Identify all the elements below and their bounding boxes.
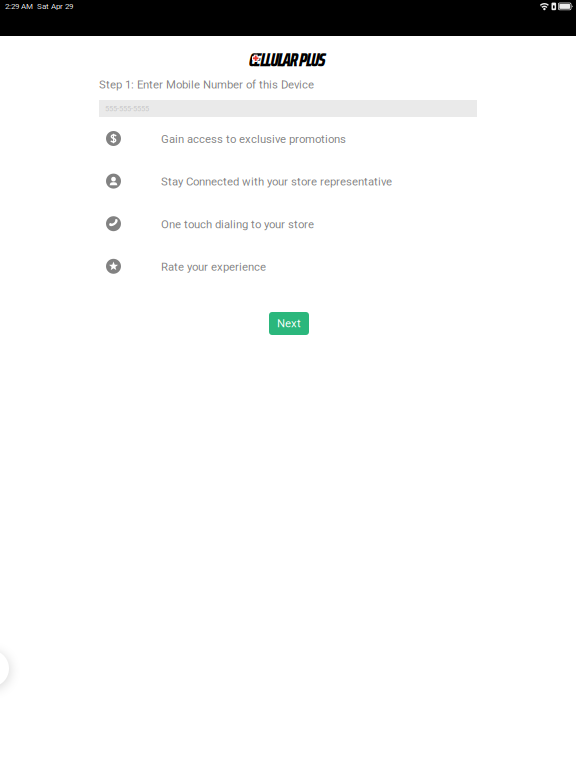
staticText: One touch dialing to your store bbox=[161, 218, 314, 231]
staticText: Rate your experience bbox=[161, 260, 266, 274]
staticText: Sat Apr 29 bbox=[37, 1, 73, 11]
staticText: Next bbox=[277, 317, 301, 330]
button[interactable]: Next bbox=[269, 312, 309, 335]
staticText: CELLULAR PLUS bbox=[249, 45, 325, 74]
staticText: 2:29 AM bbox=[5, 1, 33, 11]
staticText: Step 1: Enter Mobile Number of this Devi… bbox=[99, 78, 314, 91]
staticText: Gain access to exclusive promotions bbox=[161, 132, 346, 146]
staticText: 555-555-5555 bbox=[105, 104, 149, 113]
staticText: Stay Connected with your store represent… bbox=[161, 175, 392, 188]
